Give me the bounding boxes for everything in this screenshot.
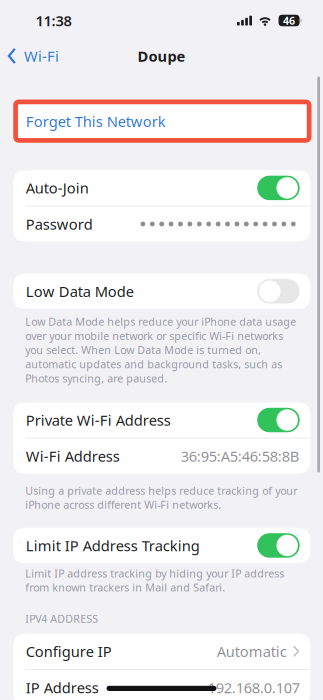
staticText: 11:38 [35, 11, 71, 30]
staticText: Configure IP [26, 642, 112, 661]
button[interactable]: Wi-Fi [0, 41, 67, 71]
staticText: Automatic [217, 642, 287, 661]
staticText: Using a private address helps reduce tra… [25, 483, 297, 512]
staticText: 36:95:A5:46:58:8B [181, 446, 300, 466]
staticText: Limit IP address tracking by hiding your… [25, 566, 284, 594]
button[interactable]: Forget This Network [13, 103, 310, 139]
button[interactable]: Low Data Mode [13, 273, 310, 309]
staticText: Low Data Mode [26, 281, 134, 301]
button[interactable]: Limit IP Address Tracking [13, 528, 310, 563]
staticText: Forget This Network [26, 111, 166, 131]
staticText: IPV4 ADDRESS [25, 611, 98, 626]
button[interactable]: Private Wi-Fi Address [13, 402, 310, 438]
staticText: Wi-Fi Address [26, 446, 120, 466]
staticText: IP Address [26, 678, 99, 697]
button[interactable]: Configure IP [13, 634, 310, 669]
staticText: Auto-Join [26, 178, 89, 198]
staticText: Low Data Mode helps reduce your iPhone d… [25, 314, 296, 385]
staticText: Limit IP Address Tracking [26, 536, 200, 555]
staticText: Doupe [137, 46, 185, 66]
button[interactable]: Auto-Join [13, 170, 310, 206]
staticText: Password [26, 214, 93, 234]
staticText: 192.168.0.107 [208, 678, 300, 697]
staticText: Wi-Fi [24, 46, 59, 66]
staticText: 46 [283, 13, 295, 28]
staticText: Private Wi-Fi Address [26, 410, 171, 430]
